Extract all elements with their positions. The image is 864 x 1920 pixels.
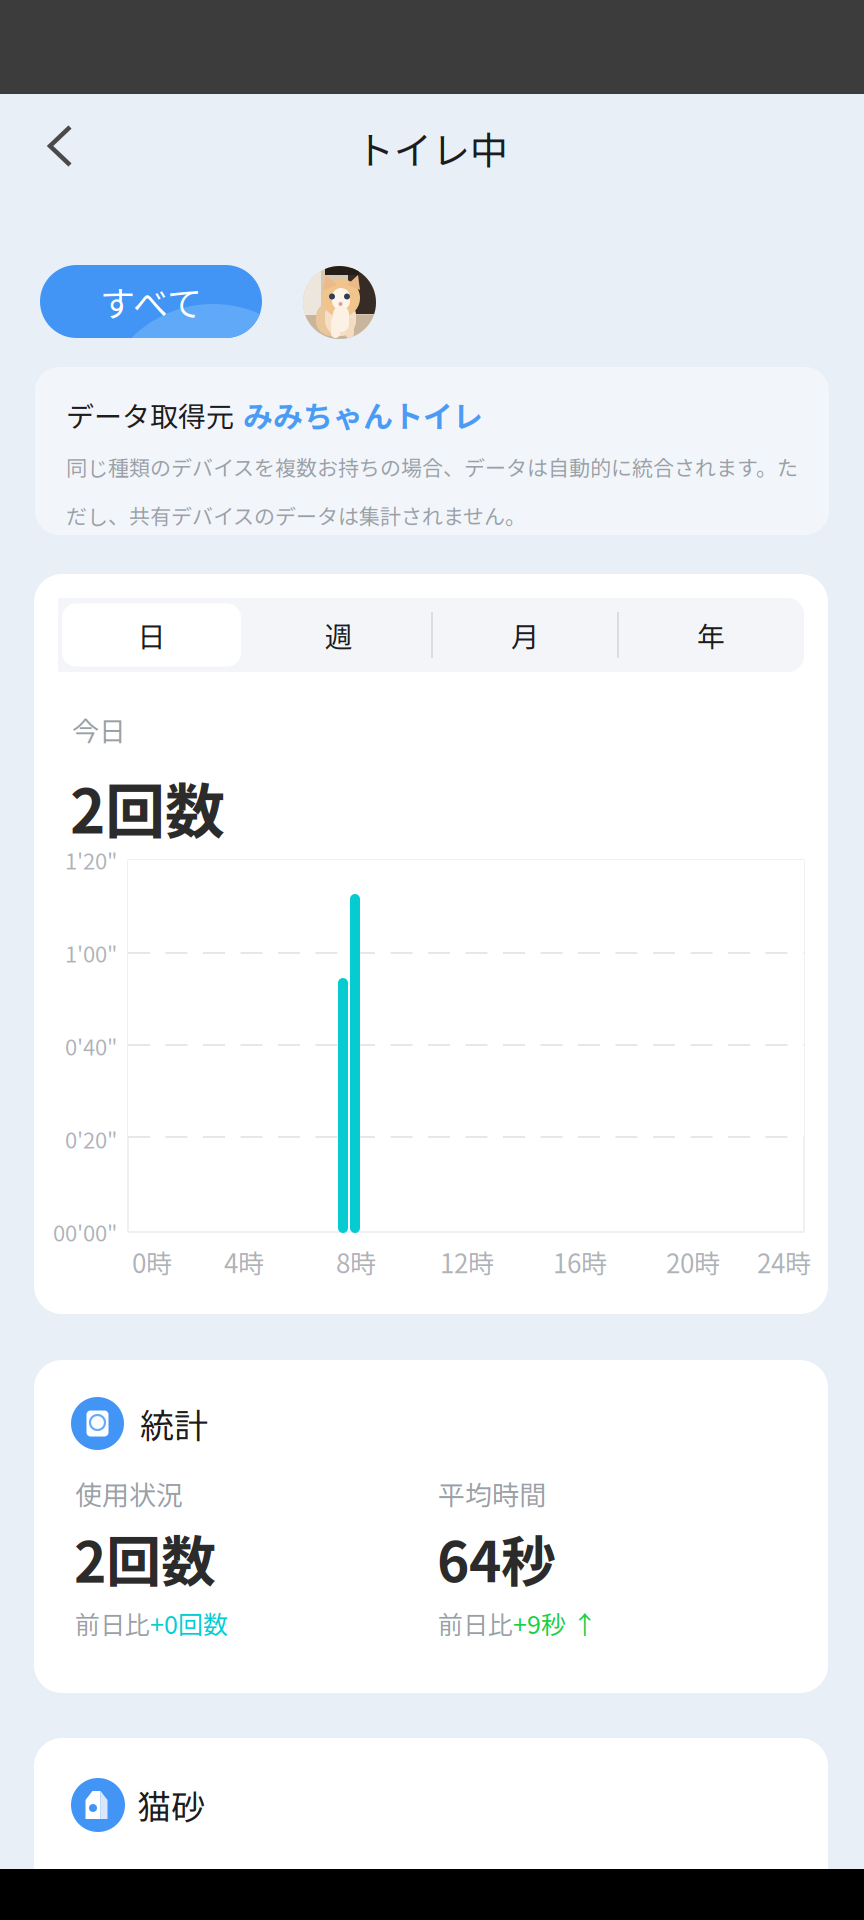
- button[interactable]: 年: [618, 598, 804, 672]
- staticText: 日: [137, 615, 165, 655]
- staticText: +9秒 ↑: [513, 1605, 597, 1641]
- staticText: みみちゃんトイレ: [243, 393, 483, 436]
- staticText: 統計: [140, 1399, 208, 1448]
- staticText: 12時: [440, 1243, 494, 1281]
- button[interactable]: 週: [245, 598, 432, 672]
- staticText: 0'20": [65, 1123, 117, 1155]
- staticText: 使用状況: [75, 1474, 183, 1513]
- staticText: 2回数: [74, 1518, 216, 1598]
- staticText: 16時: [553, 1243, 607, 1281]
- staticText: すべて: [100, 276, 202, 327]
- staticText: 同じ種類のデバイスを複数お持ちの場合、データは自動的に統合されます。ただし、共有…: [66, 451, 798, 530]
- staticText: 年: [697, 615, 725, 655]
- staticText: 8時: [336, 1243, 376, 1281]
- staticText: 0時: [132, 1243, 172, 1281]
- button[interactable]: 戻る: [24, 110, 96, 182]
- staticText: 猫砂: [137, 1780, 205, 1830]
- staticText: 前日比: [438, 1605, 513, 1641]
- staticText: 平均時間: [438, 1474, 546, 1513]
- button[interactable]: みみちゃん: [303, 266, 376, 339]
- staticText: 1'20": [65, 844, 117, 876]
- staticText: 今日: [72, 710, 126, 749]
- staticText: 4時: [224, 1243, 264, 1281]
- staticText: 24時: [757, 1243, 811, 1281]
- button[interactable]: 猫砂: [34, 1738, 828, 1920]
- button[interactable]: 月: [432, 598, 618, 672]
- staticText: 0'40": [65, 1030, 117, 1062]
- staticText: 00'00": [53, 1216, 117, 1248]
- staticText: 2回数: [70, 764, 225, 851]
- button[interactable]: すべて: [40, 265, 262, 338]
- staticText: 前日比: [75, 1605, 150, 1641]
- staticText: 20時: [666, 1243, 720, 1281]
- staticText: 1'00": [65, 937, 117, 969]
- staticText: データ取得元: [66, 394, 234, 435]
- staticText: 64秒: [437, 1518, 556, 1598]
- button[interactable]: 日: [58, 598, 245, 672]
- staticText: 週: [324, 615, 352, 655]
- staticText: +0回数: [150, 1605, 228, 1641]
- staticText: トイレ中: [356, 120, 508, 175]
- staticText: 月: [511, 615, 539, 655]
